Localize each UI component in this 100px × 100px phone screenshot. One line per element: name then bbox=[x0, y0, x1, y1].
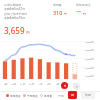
staticText: 5,000円 bbox=[85, 40, 94, 43]
staticText: 次回ご請求予定日 bbox=[4, 12, 28, 16]
staticText: 11月 bbox=[20, 82, 26, 85]
staticText: 3,659 bbox=[4, 25, 25, 36]
button[interactable]: 月 bbox=[68, 91, 77, 99]
staticText: 円 bbox=[82, 12, 87, 16]
staticText: 令和6年5月31日 bbox=[4, 7, 26, 11]
button[interactable]: 予想料金 bbox=[23, 94, 38, 97]
staticText: 円 bbox=[63, 12, 68, 16]
staticText: 予想料金 bbox=[27, 94, 38, 97]
staticText: お支払期限日 bbox=[4, 3, 22, 7]
staticText: 1月 bbox=[39, 82, 43, 85]
staticText: 予測 bbox=[58, 94, 64, 97]
staticText: 2月 bbox=[47, 82, 51, 85]
staticText: 月 bbox=[71, 93, 74, 97]
staticText: 使用量 bbox=[44, 94, 53, 97]
staticText: 3月 bbox=[56, 82, 60, 85]
staticText: 9月 bbox=[4, 82, 8, 85]
button[interactable]: 使用量 bbox=[40, 94, 53, 97]
staticText: < bbox=[64, 83, 66, 88]
staticText: > bbox=[76, 85, 78, 89]
staticText: 310 bbox=[53, 9, 63, 16]
staticText: 5月 bbox=[73, 82, 77, 85]
staticText: 1,000円 bbox=[85, 74, 94, 77]
button[interactable]: 次の期間 bbox=[73, 83, 80, 90]
staticText: 使用量 bbox=[53, 3, 62, 7]
staticText: 4月 bbox=[65, 82, 69, 85]
button[interactable]: 前の期間 bbox=[61, 82, 68, 89]
staticText: 電気料金 bbox=[10, 94, 21, 97]
button[interactable]: 年間 bbox=[81, 91, 95, 99]
staticText: 前年同月比 bbox=[76, 3, 91, 7]
staticText: 年間 bbox=[85, 93, 91, 97]
staticText: ー bbox=[76, 9, 82, 16]
staticText: 10月 bbox=[11, 82, 17, 85]
staticText: 3,000円 bbox=[85, 57, 94, 60]
staticText: 令和6年6月15日 bbox=[4, 16, 26, 20]
staticText: 円 bbox=[26, 31, 30, 36]
staticText: 4,000円 bbox=[85, 48, 94, 51]
button[interactable]: 電気料金 bbox=[6, 94, 21, 97]
staticText: 2,000円 bbox=[85, 66, 94, 69]
staticText: 12月 bbox=[29, 82, 35, 85]
